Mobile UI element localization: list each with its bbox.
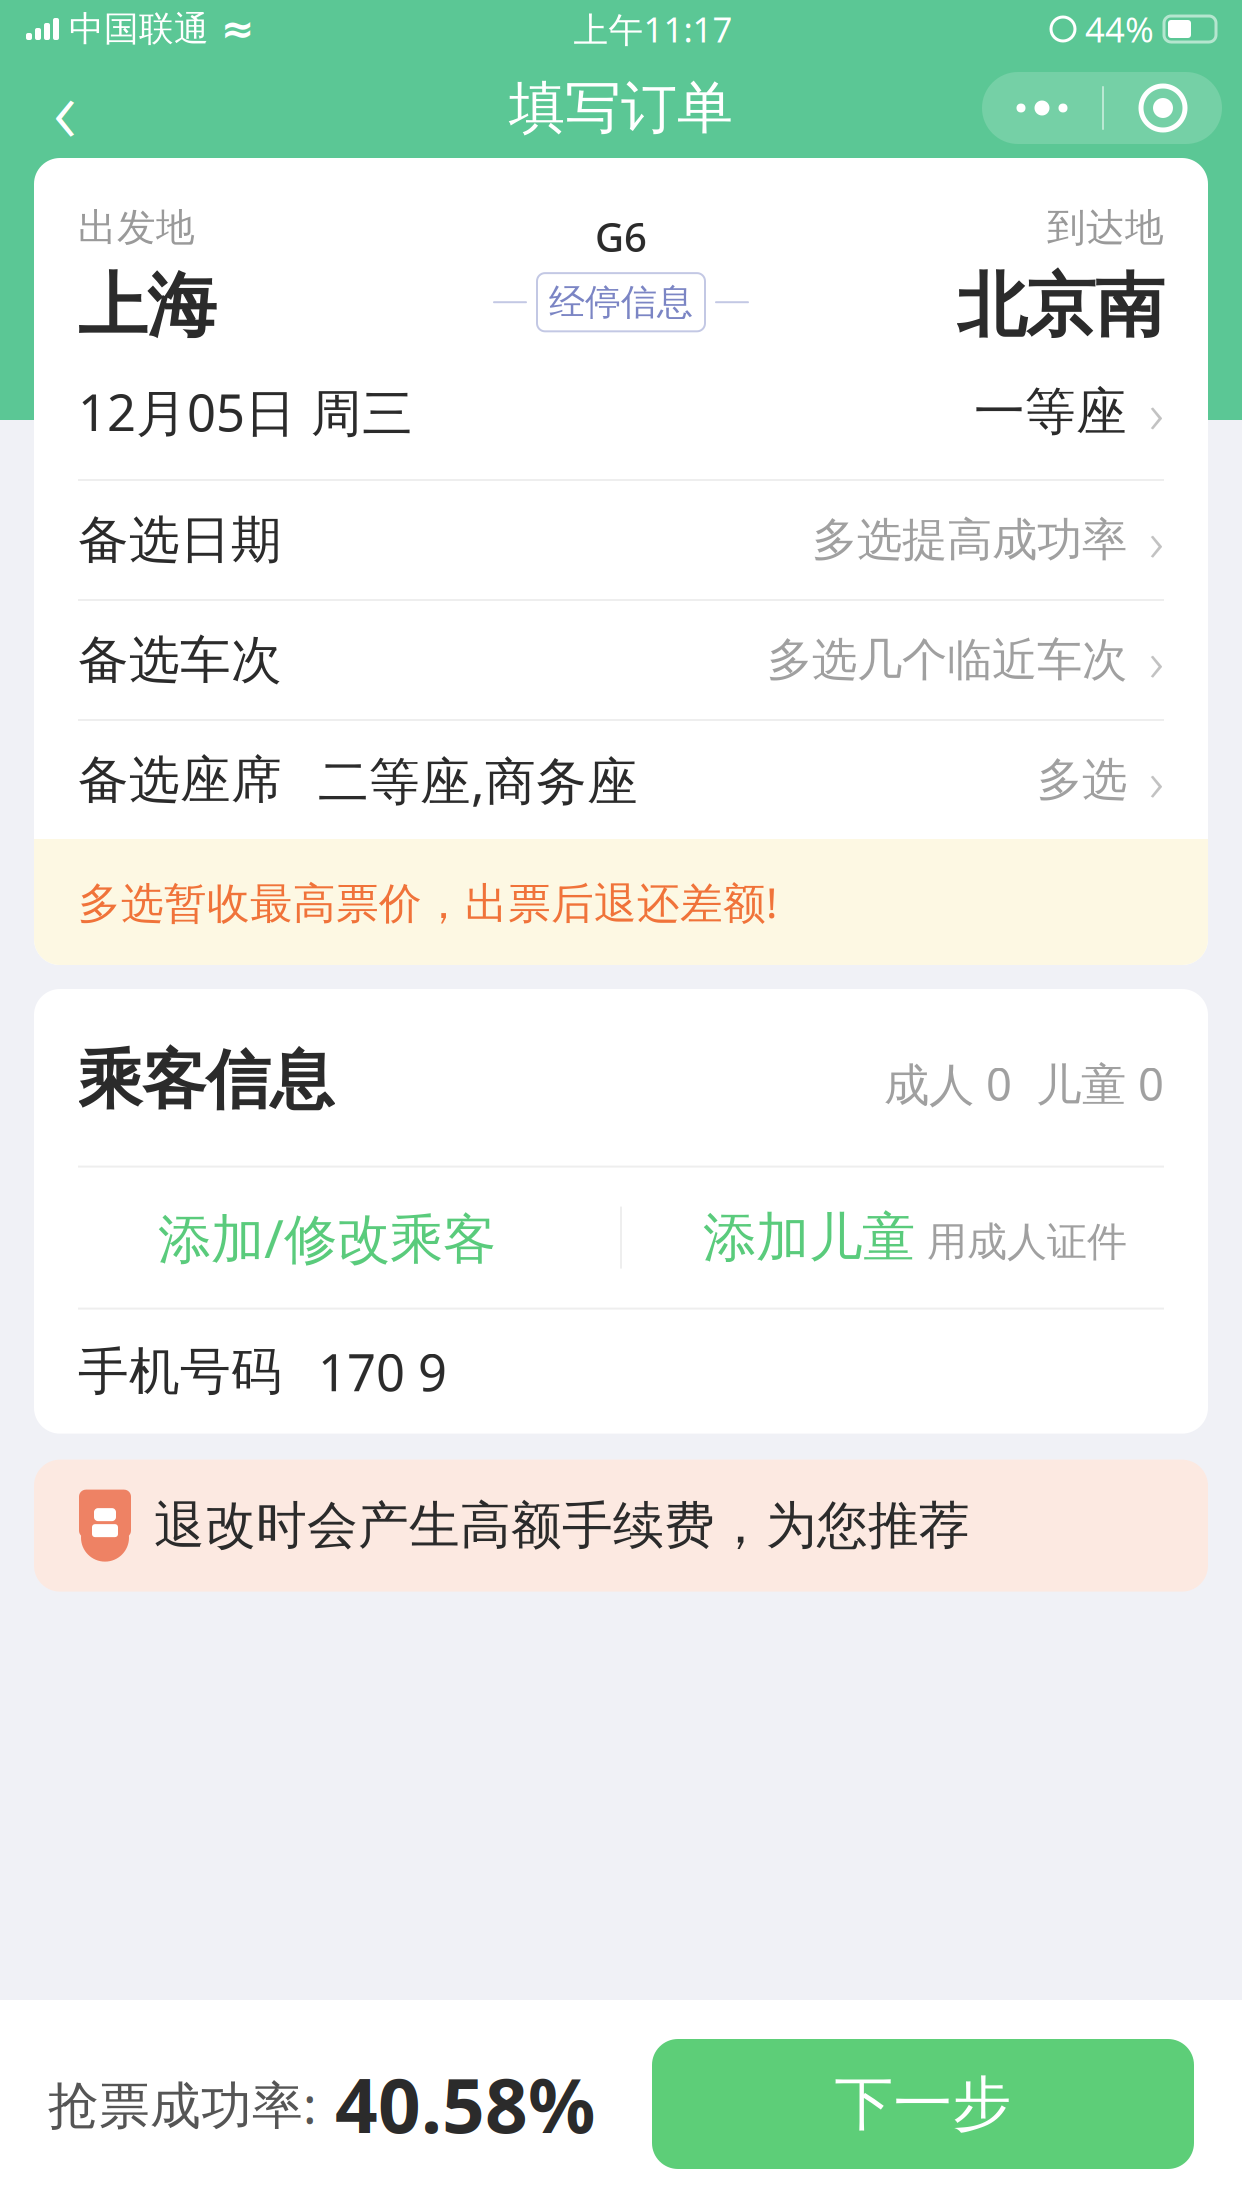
staticText: 40.58% (335, 2054, 595, 2154)
staticText: 上午11:17 (573, 6, 732, 52)
staticText: 手机号码 (78, 1340, 282, 1403)
button[interactable]: Back (20, 65, 110, 151)
button[interactable]: 手机号码 (34, 1310, 1208, 1434)
staticText: 备选车次 (78, 629, 282, 691)
staticText: 多选几个临近车次 (767, 632, 1127, 688)
button[interactable]: 添加/修改乘客 (34, 1168, 620, 1308)
staticText: ‹ (53, 48, 77, 168)
staticText: 添加儿童 (703, 1205, 915, 1270)
staticText: 12月05日 周三 (78, 378, 413, 445)
staticText: 添加/修改乘客 (158, 1202, 496, 1273)
staticText: 备选座席 (78, 749, 282, 811)
staticText: 多选 (1037, 752, 1127, 808)
button[interactable]: More (982, 72, 1102, 144)
button[interactable]: Close (1104, 72, 1222, 144)
staticText: 北京南 (957, 263, 1164, 349)
staticText: 用成人证件 (927, 1217, 1127, 1266)
staticText: 抢票成功率: (48, 2070, 317, 2138)
staticText: 多选暂收最高票价，出票后退还差额! (78, 874, 777, 930)
staticText: 44% (1085, 6, 1154, 52)
staticText: 一等座 (974, 381, 1127, 443)
staticText: 成人 0 儿童 0 (884, 1053, 1164, 1114)
staticText: 二等座,商务座 (318, 746, 638, 814)
staticText: 经停信息 (549, 280, 693, 324)
button[interactable]: 经停信息 (537, 273, 705, 331)
staticText: 多选提高成功率 (812, 512, 1127, 568)
staticText: 备选日期 (78, 509, 282, 571)
staticText: 乘客信息 (78, 1041, 334, 1120)
staticText: G6 (595, 210, 647, 263)
staticText: 填写订单 (509, 74, 733, 142)
staticText: 退改时会产生高额手续费，为您推荐 (154, 1494, 970, 1557)
button[interactable]: 备选车次 (34, 601, 1208, 719)
button[interactable]: 添加儿童 (622, 1168, 1208, 1308)
button[interactable]: 备选日期 (34, 481, 1208, 599)
button[interactable]: 备选座席 (34, 721, 1208, 839)
staticText: 下一步 (834, 2068, 1011, 2140)
staticText: 到达地 (1047, 204, 1164, 251)
staticText: 170 9 (318, 1338, 447, 1405)
button[interactable]: 下一步 (652, 2039, 1194, 2169)
button[interactable]: 12月05日 周三 (34, 349, 1208, 479)
staticText: ≈ (221, 6, 255, 52)
staticText: 上海 (78, 263, 216, 349)
staticText: 中国联通 (69, 8, 209, 50)
staticText: › (1149, 375, 1164, 449)
staticText: › (1149, 503, 1164, 577)
staticText: 出发地 (78, 204, 195, 251)
staticText: › (1149, 623, 1164, 697)
staticText: › (1149, 743, 1164, 817)
